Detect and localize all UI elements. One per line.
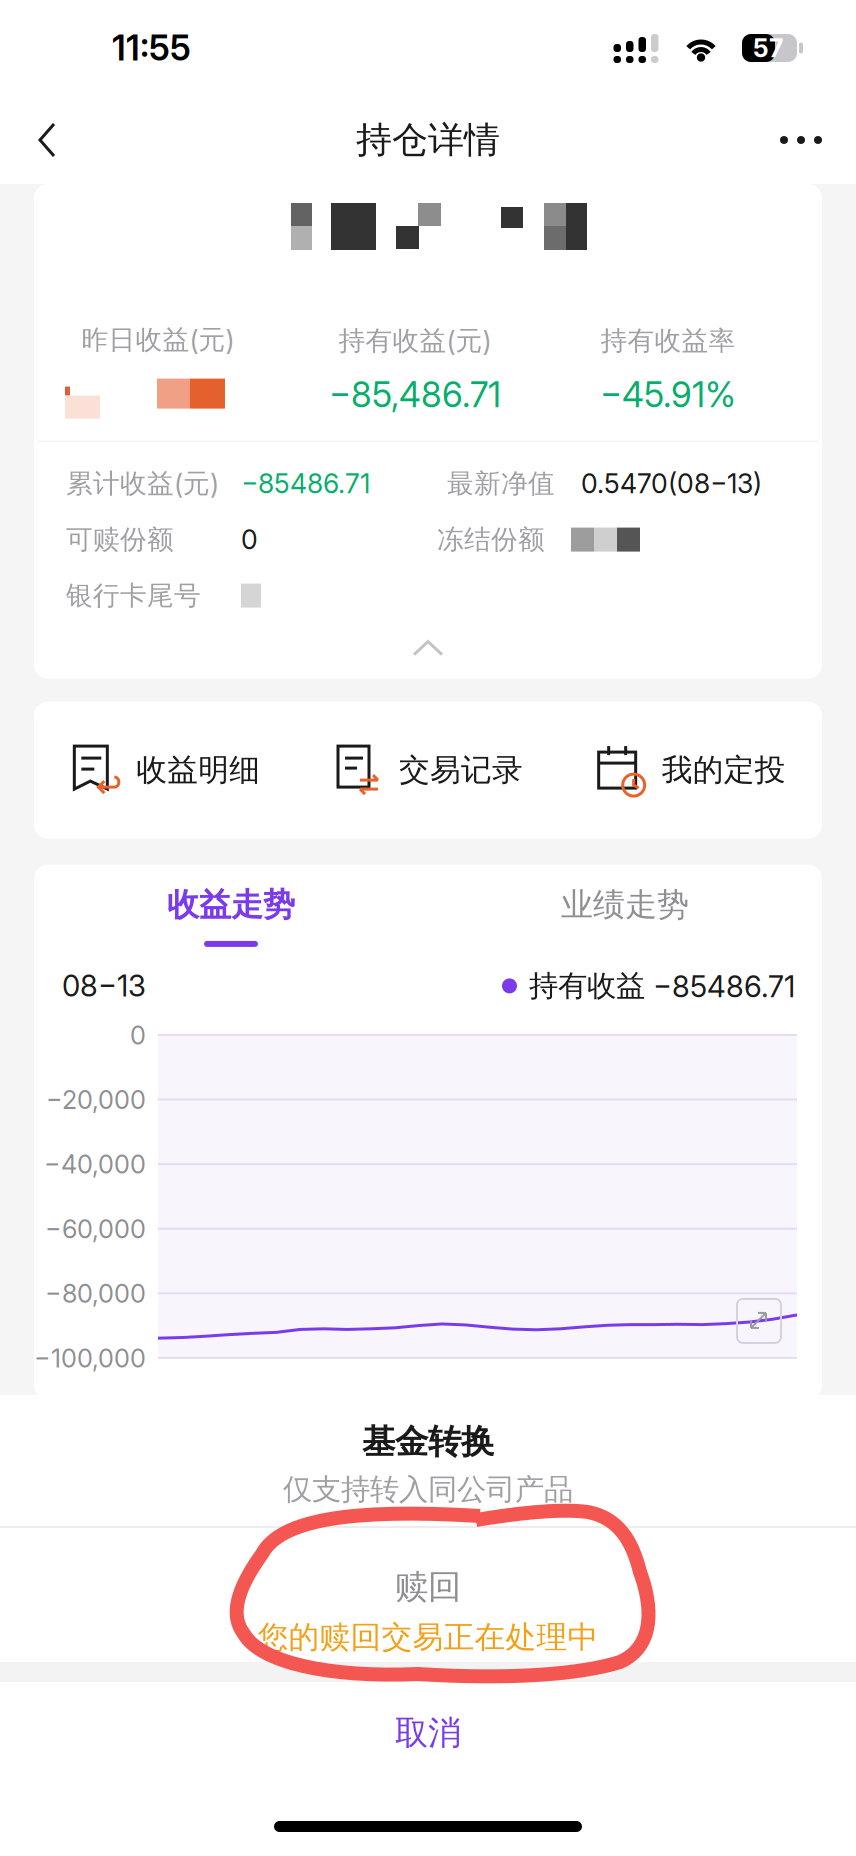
staticText: 赎回 (395, 1566, 461, 1608)
staticText: −80,000 (45, 1278, 146, 1309)
button[interactable]: Back (12, 102, 84, 178)
button[interactable]: More (758, 102, 844, 178)
staticText: 我的定投 (662, 751, 786, 789)
staticText: 0.5470(08−13) (581, 467, 762, 500)
staticText: 累计收益(元) (66, 467, 219, 500)
staticText: −85,486.71 (329, 374, 501, 415)
button[interactable]: 收益明细 (34, 702, 297, 839)
staticText: 持有收益(元) (338, 324, 491, 358)
staticText: 持有收益率 (600, 324, 735, 358)
staticText: −85486.71 (241, 467, 370, 500)
staticText: −20,000 (46, 1084, 146, 1115)
staticText: 最新净值 (447, 467, 555, 500)
staticText: 11:55 (112, 27, 191, 69)
button[interactable]: 业绩走势 (428, 865, 822, 969)
staticText: 收益走势 (167, 885, 295, 925)
staticText: 57 (753, 33, 784, 63)
button[interactable]: 我的定投 (559, 702, 822, 839)
staticText: −40,000 (44, 1149, 146, 1180)
staticText: 0 (130, 1020, 146, 1051)
staticText: 仅支持转入同公司产品 (283, 1471, 573, 1508)
staticText: 昨日收益(元) (81, 323, 234, 357)
button[interactable]: 基金转换 (0, 1395, 856, 1526)
button[interactable]: 取消 (0, 1682, 856, 1789)
staticText: 业绩走势 (561, 885, 689, 925)
button[interactable]: 交易记录 (297, 702, 559, 839)
staticText: 冻结份额 (437, 523, 545, 556)
button[interactable]: Collapse (34, 634, 822, 664)
staticText: 可赎份额 (66, 523, 174, 556)
staticText: 取消 (395, 1712, 461, 1754)
staticText: 08−13 (62, 968, 146, 1004)
staticText: 银行卡尾号 (66, 579, 201, 612)
staticText: 基金转换 (362, 1421, 494, 1463)
staticText: 0 (241, 523, 258, 556)
staticText: −60,000 (45, 1214, 146, 1244)
staticText: −45.91% (600, 374, 736, 415)
button[interactable]: 收益走势 (34, 865, 428, 969)
button[interactable]: 赎回 (0, 1528, 856, 1662)
staticText: 持仓详情 (356, 117, 500, 163)
staticText: −100,000 (34, 1343, 146, 1374)
staticText: 持有收益 −85486.71 (529, 967, 795, 1004)
staticText: 交易记录 (399, 751, 523, 789)
staticText: 您的赎回交易正在处理中 (257, 1618, 598, 1657)
staticText: 收益明细 (136, 751, 260, 789)
